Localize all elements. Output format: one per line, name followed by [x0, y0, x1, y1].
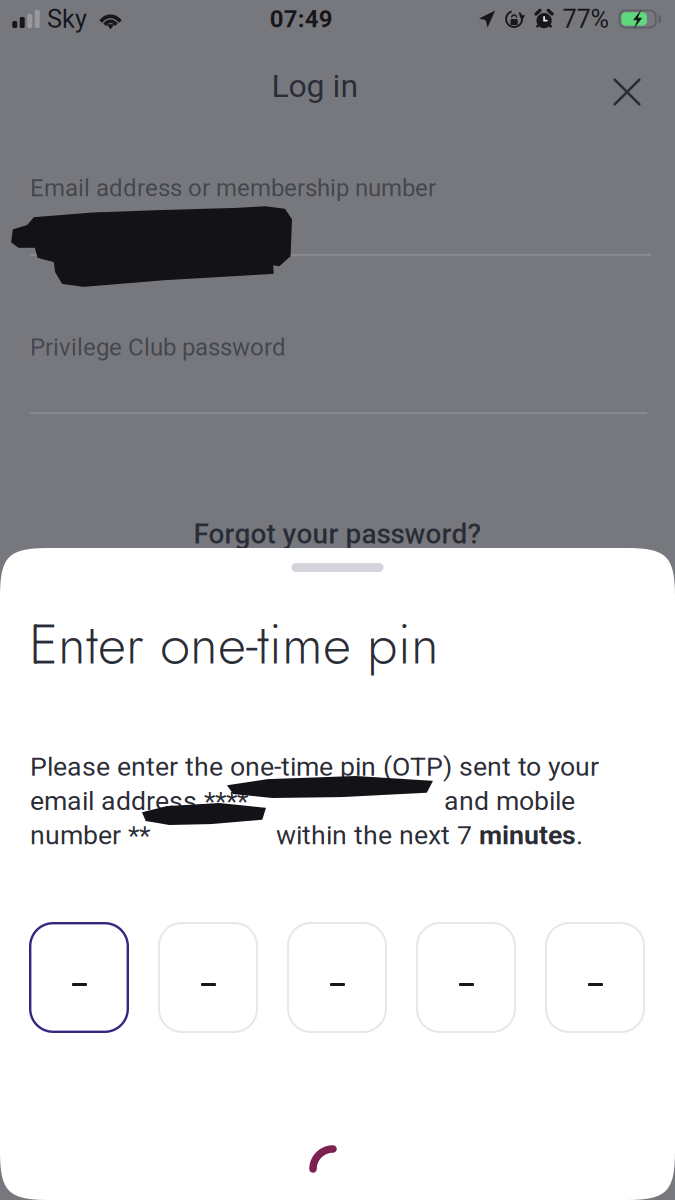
- button[interactable]: Close: [600, 65, 654, 119]
- button[interactable]: One-time pin digit: [158, 922, 258, 1033]
- staticText: email address ****: [30, 785, 248, 816]
- button[interactable]: One-time pin digit: [416, 922, 516, 1033]
- staticText: Privilege Club password: [30, 333, 286, 361]
- staticText: .: [576, 819, 583, 851]
- staticText: Log in: [271, 67, 358, 105]
- staticText: Sky: [47, 4, 87, 34]
- button[interactable]: Forgot your password?: [0, 511, 675, 557]
- staticText: [150, 819, 276, 851]
- button[interactable]: One-time pin digit: [287, 922, 387, 1033]
- staticText: [248, 785, 437, 816]
- button[interactable]: One-time pin digit: [29, 922, 129, 1033]
- staticText: number **: [30, 819, 150, 851]
- staticText: within the next 7: [276, 819, 479, 851]
- staticText: Enter one-time pin: [29, 605, 439, 684]
- staticText: Forgot your password?: [193, 517, 481, 550]
- staticText: and mobile: [437, 785, 575, 816]
- staticText: 77%: [563, 4, 610, 34]
- staticText: Please enter the one-time pin (OTP) sent…: [30, 751, 599, 782]
- button[interactable]: One-time pin digit: [545, 922, 645, 1033]
- staticText: minutes: [479, 819, 576, 851]
- staticText: 07:49: [270, 5, 333, 33]
- staticText: Email address or membership number: [30, 174, 436, 202]
